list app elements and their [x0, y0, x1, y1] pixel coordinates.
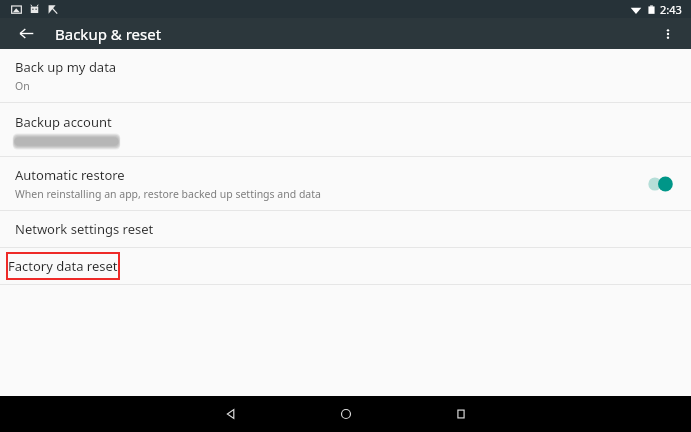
staticText: On	[15, 79, 30, 93]
staticText: Network settings reset	[15, 220, 154, 238]
button[interactable]: Factory data reset	[0, 248, 691, 284]
staticText: Backup account	[15, 113, 112, 131]
button[interactable]: Back	[173, 396, 288, 432]
staticText: Back up my data	[15, 58, 117, 76]
button[interactable]: Backup account	[0, 103, 691, 156]
button[interactable]: Home	[288, 396, 403, 432]
button[interactable]: Navigate up	[13, 20, 40, 47]
button[interactable]: Automatic restore	[0, 157, 691, 210]
staticText: When reinstalling an app, restore backed…	[15, 187, 321, 201]
button[interactable]: Back up my data	[0, 49, 691, 102]
staticText: Automatic restore	[15, 166, 125, 184]
button[interactable]: Network settings reset	[0, 211, 691, 247]
button[interactable]: Automatic restore toggle	[645, 174, 675, 194]
staticText: Factory data reset	[8, 257, 118, 275]
button[interactable]: Recent apps	[403, 396, 518, 432]
staticText: 2:43	[660, 2, 682, 17]
staticText: Backup & reset	[55, 24, 162, 44]
button[interactable]: More options	[655, 21, 681, 47]
